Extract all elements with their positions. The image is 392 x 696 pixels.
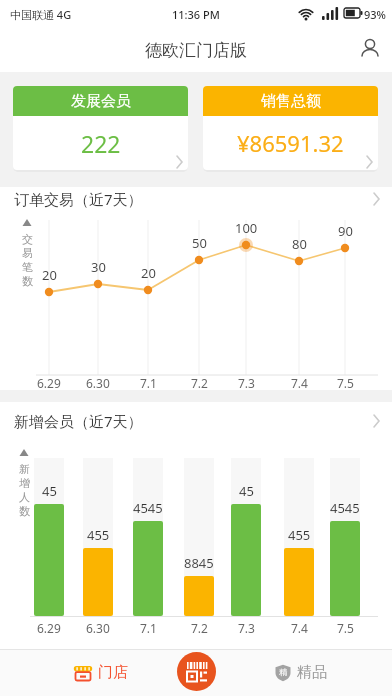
button[interactable]: 精 [260, 649, 340, 696]
staticText: 6.29 [37, 375, 61, 391]
staticText: 7.5 [337, 620, 354, 636]
button[interactable] [203, 86, 378, 170]
staticText: 新 [19, 462, 30, 476]
staticText: 7.1 [140, 375, 157, 391]
button[interactable] [360, 38, 380, 58]
staticText: 100 [235, 219, 258, 237]
staticText: 80 [292, 235, 307, 253]
staticText: 7.4 [291, 375, 308, 391]
staticText: 93% [364, 7, 386, 22]
staticText: 新增会员（近7天） [14, 411, 143, 431]
button[interactable] [0, 187, 392, 390]
staticText: 订单交易（近7天） [14, 189, 143, 209]
staticText: 7.2 [191, 620, 208, 636]
staticText: 4545 [330, 499, 360, 517]
staticText: 精 [279, 667, 287, 677]
staticText: 11:36 PM [172, 7, 220, 22]
button[interactable] [0, 402, 392, 649]
staticText: 人 [19, 490, 30, 504]
staticText: 数 [19, 504, 30, 518]
staticText: 4545 [133, 499, 163, 517]
staticText: 销售总额 [261, 92, 321, 111]
staticText: 7.3 [238, 620, 255, 636]
staticText: 数 [22, 274, 33, 288]
button[interactable] [177, 652, 216, 691]
staticText: 222 [81, 128, 121, 159]
staticText: 6.29 [37, 620, 61, 636]
staticText: 7.3 [238, 375, 255, 391]
staticText: 易 [22, 246, 33, 260]
staticText: 30 [91, 258, 106, 276]
staticText: 45 [239, 482, 254, 500]
staticText: 7.1 [140, 620, 157, 636]
staticText: 7.5 [337, 375, 354, 391]
staticText: 20 [42, 266, 57, 284]
staticText: 交 [22, 232, 33, 246]
staticText: 45 [42, 482, 57, 500]
staticText: 455 [87, 526, 110, 544]
staticText: 笔 [22, 260, 33, 274]
button[interactable] [13, 86, 188, 170]
staticText: 8845 [184, 554, 214, 572]
staticText: 发展会员 [71, 92, 131, 111]
staticText: 455 [288, 526, 311, 544]
staticText: 7.4 [291, 620, 308, 636]
staticText: 6.30 [86, 375, 110, 391]
staticText: 50 [192, 234, 207, 252]
staticText: 90 [338, 222, 353, 240]
staticText: 门店 [98, 663, 128, 682]
staticText: 20 [141, 264, 156, 282]
staticText: 德欧汇门店版 [145, 40, 247, 61]
staticText: ¥86591.32 [237, 128, 344, 158]
button[interactable]: 门店 [60, 649, 140, 696]
staticText: 增 [19, 476, 30, 490]
staticText: 6.30 [86, 620, 110, 636]
staticText: 精品 [297, 663, 327, 682]
staticText: 中国联通 4G [10, 7, 72, 22]
staticText: 7.2 [191, 375, 208, 391]
